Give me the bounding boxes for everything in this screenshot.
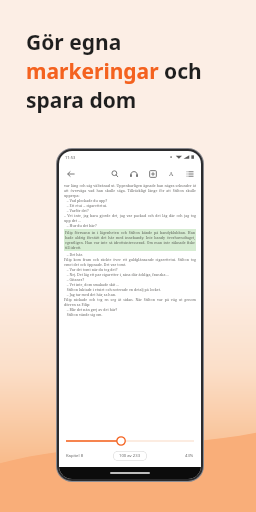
staticText: Filip kom fram och räckte över ett guldg… [64, 257, 196, 267]
button[interactable]: 100 av 233 [113, 451, 147, 461]
button[interactable]: Search [108, 167, 121, 180]
staticText: markeringar och [26, 57, 202, 86]
button[interactable]: Back [64, 167, 77, 180]
staticText: spara dom [26, 86, 137, 115]
staticText: Stilton luktade i etuiet och noterade en… [64, 287, 196, 292]
staticText: – Vad plockade du upp? [64, 198, 196, 203]
staticText: Filip nickade och tog en seg åt sidan. N… [64, 297, 196, 307]
staticText: Gör egna [26, 28, 122, 57]
button[interactable]: Filip försvann in i lägenheten och Stilt… [65, 230, 195, 250]
staticText: Filip försvann in i lägenheten och Stilt… [65, 230, 195, 250]
button[interactable]: Bookmark [146, 167, 159, 180]
staticText: – Vet inte, jag bara gjorde det, jag var… [64, 213, 196, 223]
staticText: – Nej. Det låg ett par cigaretter i, sån… [64, 272, 196, 277]
staticText: 11:53 [65, 155, 76, 160]
staticText: – Ett etui ... cigarettetui. [64, 203, 196, 208]
staticText: Stilton vände sig om. [64, 312, 196, 317]
staticText: – Blir det nån grej av det här? [64, 307, 196, 312]
staticText: – Varför det? [64, 208, 196, 213]
staticText: – Vet inte, dom smakade skit ... [64, 282, 196, 287]
staticText: – Hur du det här? [64, 223, 196, 228]
staticText: – Jag tar med det här, sa han. [64, 292, 196, 297]
staticText: A [169, 170, 174, 178]
staticText: 100 av 233 [119, 453, 141, 459]
staticText: var lång och såg vältränad ut. Uppenbarl… [64, 183, 196, 198]
button[interactable]: Listen [127, 167, 140, 180]
button[interactable]: Reading progress [66, 436, 194, 446]
button[interactable]: Text settings [165, 167, 178, 180]
staticText: – Var det tomt när du tog det? [64, 267, 196, 272]
staticText: – Gitanes? [64, 277, 196, 282]
button[interactable]: Contents [183, 167, 196, 180]
staticText: 43% [185, 453, 194, 459]
staticText: – Det här. [64, 252, 196, 257]
staticText: Kapitel 8 [66, 453, 84, 459]
